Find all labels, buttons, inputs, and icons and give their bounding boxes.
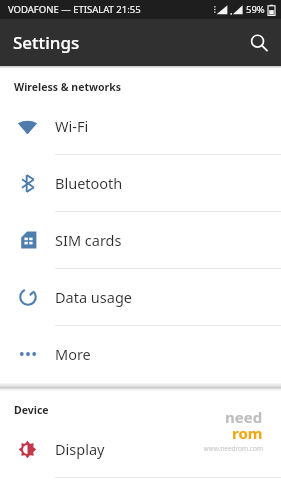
staticText: 59%: [246, 3, 265, 16]
staticText: need: [225, 407, 263, 427]
staticText: Data usage: [55, 287, 132, 307]
staticText: Settings: [13, 31, 80, 54]
staticText: More: [55, 344, 91, 364]
button[interactable]: More: [0, 326, 281, 382]
button[interactable]: Search: [237, 21, 281, 65]
staticText: VODAFONE — ETISALAT 21:55: [8, 3, 141, 16]
button[interactable]: Display: [0, 421, 281, 477]
button[interactable]: Data usage: [0, 269, 281, 325]
button[interactable]: SIM cards: [0, 212, 281, 268]
staticText: Wireless & networks: [14, 80, 121, 94]
staticText: Wi-Fi: [55, 116, 89, 136]
button[interactable]: Wi-Fi: [0, 98, 281, 154]
staticText: rom: [232, 423, 263, 443]
staticText: SIM cards: [55, 230, 122, 250]
staticText: Bluetooth: [55, 173, 123, 193]
staticText: Device: [14, 403, 49, 417]
staticText: www.needrom.com: [203, 444, 263, 453]
staticText: Display: [55, 439, 105, 459]
button[interactable]: Bluetooth: [0, 155, 281, 211]
